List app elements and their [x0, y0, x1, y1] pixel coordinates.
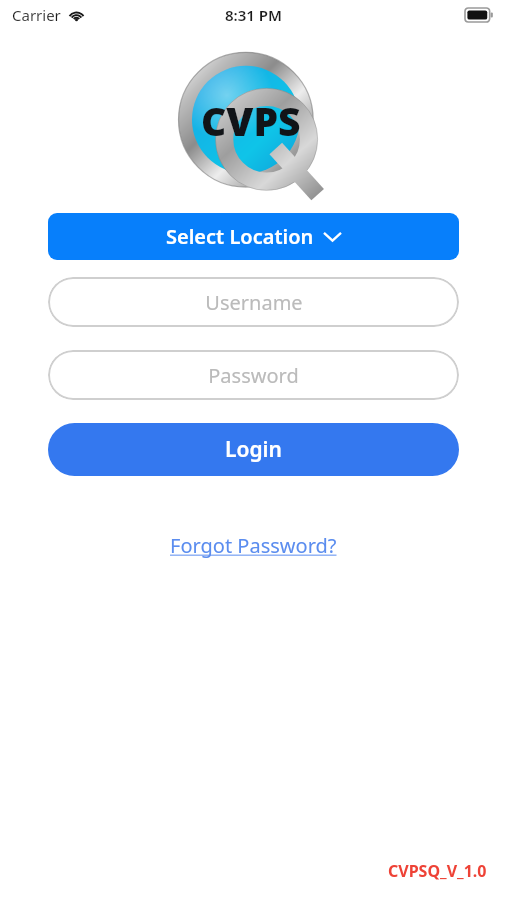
button[interactable]: Username [48, 277, 459, 327]
button[interactable]: Select Location [48, 213, 459, 260]
button[interactable]: Forgot Password? [164, 529, 343, 562]
staticText: Username [205, 289, 303, 316]
staticText: CVPS [201, 94, 301, 147]
staticText: Carrier [12, 5, 61, 25]
staticText: Select Location [166, 223, 314, 250]
button[interactable]: Login [48, 423, 459, 476]
button[interactable]: Password [48, 350, 459, 400]
staticText: 8:31 PM [225, 5, 282, 25]
staticText: CVPSQ_V_1.0 [388, 860, 487, 882]
staticText: Login [225, 435, 282, 464]
staticText: Password [208, 362, 299, 389]
staticText: Forgot Password? [170, 532, 337, 559]
